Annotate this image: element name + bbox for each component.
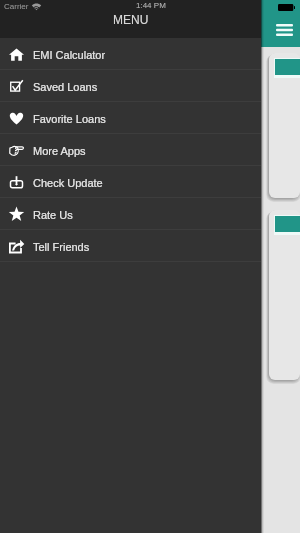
button[interactable] bbox=[269, 53, 300, 198]
button[interactable]: Rate Us bbox=[0, 198, 261, 229]
staticText: Carrier bbox=[4, 2, 29, 11]
button[interactable]: More Apps bbox=[0, 134, 261, 165]
staticText: 1:44 PM bbox=[136, 1, 166, 10]
staticText: Check Update bbox=[33, 177, 103, 189]
button[interactable]: Check Update bbox=[0, 166, 261, 197]
staticText: Rate Us bbox=[33, 209, 73, 221]
staticText: EMI Calculator bbox=[33, 49, 106, 61]
staticText: Favorite Loans bbox=[33, 113, 106, 125]
button[interactable]: EMI Calculator bbox=[0, 38, 261, 69]
staticText: More Apps bbox=[33, 145, 86, 157]
button[interactable] bbox=[269, 210, 300, 380]
staticText: MENU bbox=[113, 13, 149, 26]
button[interactable]: Favorite Loans bbox=[0, 102, 261, 133]
button[interactable]: Open navigation menu bbox=[276, 24, 293, 36]
button[interactable]: Tell Friends bbox=[0, 230, 261, 261]
button[interactable]: Saved Loans bbox=[0, 70, 261, 101]
staticText: Saved Loans bbox=[33, 81, 98, 93]
staticText: Tell Friends bbox=[33, 241, 90, 253]
